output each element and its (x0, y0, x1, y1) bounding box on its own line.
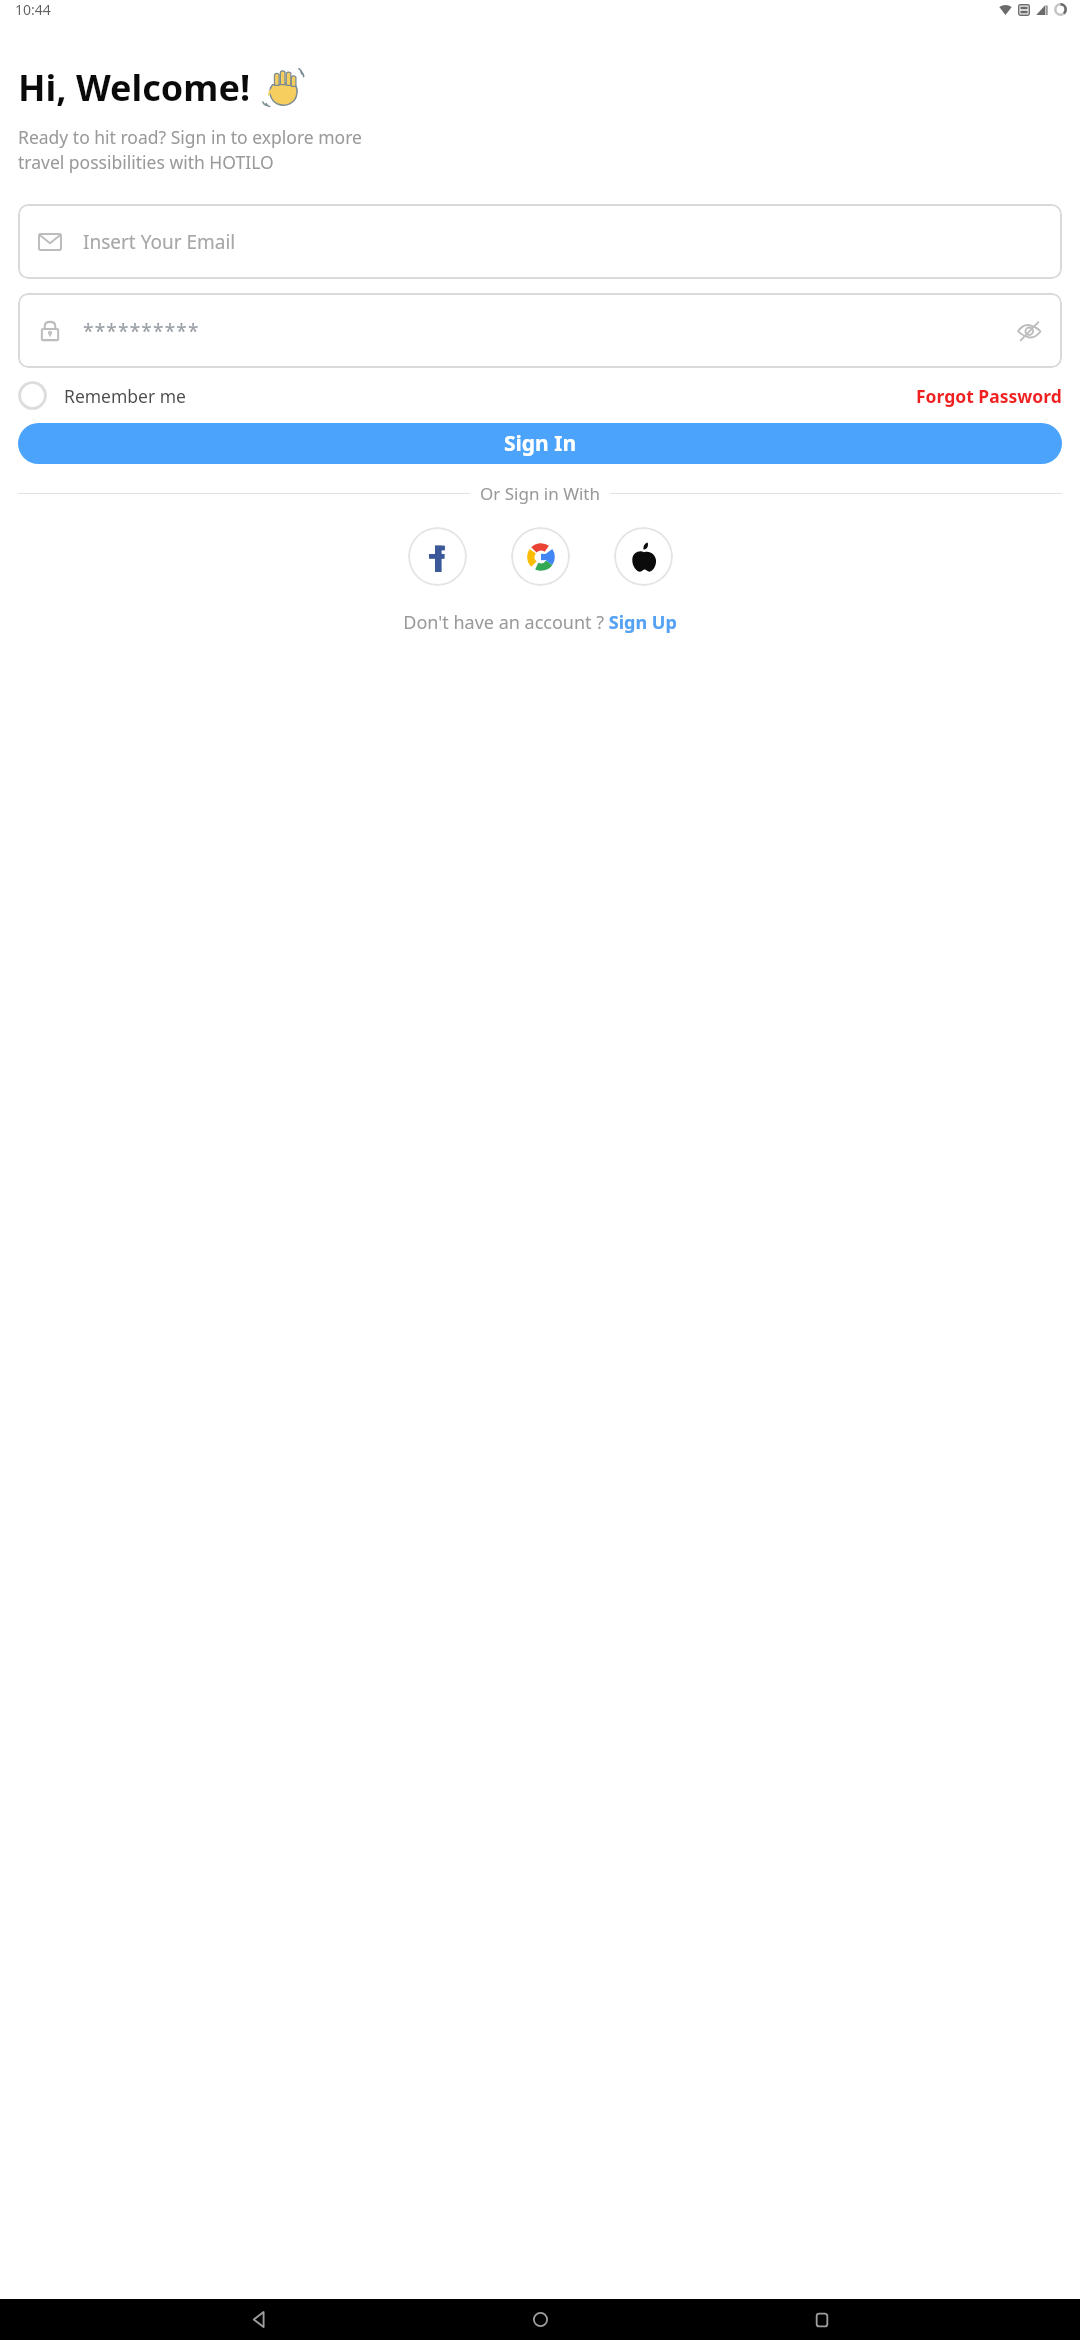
button[interactable]: Sign in with Apple (614, 527, 673, 586)
button[interactable]: Don't have an account ? Sign Up (403, 610, 677, 635)
button[interactable]: Sign in with Google (511, 527, 570, 586)
button[interactable]: Home (516, 2299, 564, 2340)
button[interactable]: Insert Your Email (18, 204, 1062, 279)
button[interactable]: Remember me (18, 381, 186, 410)
staticText: Sign In (504, 429, 577, 458)
staticText: Insert Your Email (83, 229, 236, 255)
staticText: Forgot Password (916, 384, 1062, 408)
button[interactable]: Sign In (18, 423, 1062, 464)
staticText: Hi, Welcome! (18, 63, 251, 112)
staticText: ********** (83, 318, 200, 344)
button[interactable]: ********** (18, 293, 1062, 368)
staticText: Ready to hit road? Sign in to explore mo… (18, 125, 362, 175)
button[interactable]: Sign in with Facebook (408, 527, 467, 586)
button[interactable]: Recent apps (798, 2299, 846, 2340)
button[interactable]: Forgot Password (916, 384, 1062, 408)
button[interactable]: Back (234, 2299, 282, 2340)
staticText: Or Sign in With (480, 482, 600, 505)
staticText: Don't have an account ? Sign Up (403, 610, 677, 635)
staticText: Remember me (64, 384, 186, 408)
staticText: 10:44 (15, 0, 51, 19)
button[interactable]: Show password (1014, 316, 1044, 346)
